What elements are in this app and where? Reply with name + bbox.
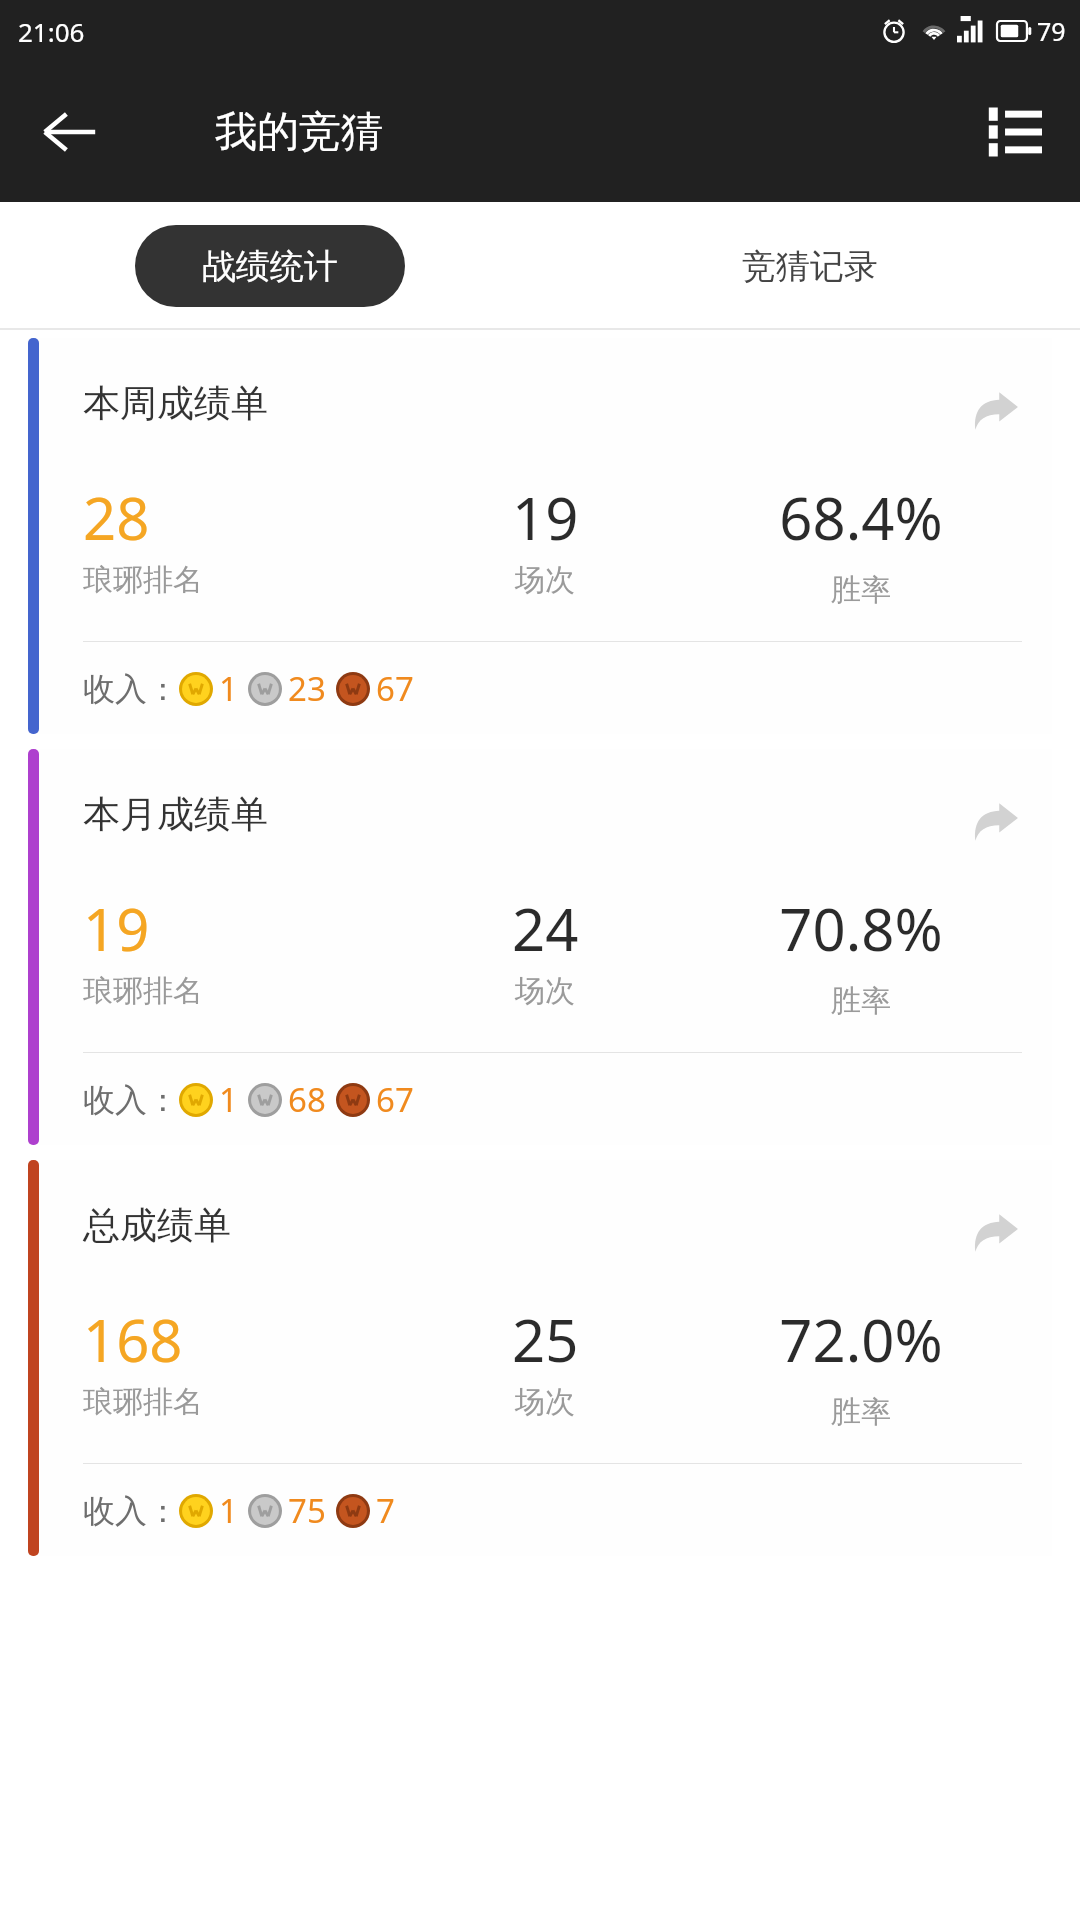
staticText: 琅琊排名 [83,561,203,599]
button[interactable]: 本月成绩单 [28,749,1052,1145]
staticText: 1 [219,666,238,711]
staticText: 胜率 [831,1393,891,1431]
button[interactable]: Ranking list [978,96,1050,168]
staticText: 1 [219,1488,238,1533]
staticText: 场次 [515,561,575,599]
button[interactable]: 战绩统计 [135,225,405,307]
staticText: 7 [376,1488,395,1533]
staticText: 23 [288,666,326,711]
staticText: 本周成绩单 [83,380,268,427]
staticText: 68.4% [779,478,943,557]
staticText: 24 [512,889,579,968]
button[interactable]: Back [40,102,100,162]
button[interactable]: 本周成绩单 [28,338,1052,734]
staticText: 70.8% [779,889,943,968]
staticText: 68 [288,1077,326,1122]
staticText: 琅琊排名 [83,1383,203,1421]
staticText: 25 [512,1300,579,1379]
staticText: 收入： [83,1491,179,1531]
staticText: 67 [376,1077,414,1122]
staticText: 竞猜记录 [742,245,878,288]
staticText: 28 [83,478,150,557]
staticText: 胜率 [831,982,891,1020]
staticText: 收入： [83,669,179,709]
staticText: 胜率 [831,571,891,609]
staticText: 本月成绩单 [83,791,268,838]
staticText: 168 [83,1300,183,1379]
staticText: 75 [288,1488,326,1533]
button[interactable]: 竞猜记录 [540,225,1080,307]
staticText: 21:06 [18,14,85,49]
button[interactable]: Share [964,1202,1022,1260]
staticText: 场次 [515,1383,575,1421]
staticText: 场次 [515,972,575,1010]
button[interactable]: Share [964,380,1022,438]
staticText: 收入： [83,1080,179,1120]
staticText: 总成绩单 [83,1202,231,1249]
button[interactable]: Share [964,791,1022,849]
staticText: 琅琊排名 [83,972,203,1010]
staticText: 我的竞猜 [215,106,383,159]
staticText: 19 [512,478,579,557]
staticText: 67 [376,666,414,711]
button[interactable]: 总成绩单 [28,1160,1052,1556]
staticText: 79 [1037,14,1066,48]
staticText: 战绩统计 [202,245,338,288]
staticText: 1 [219,1077,238,1122]
staticText: 19 [83,889,150,968]
staticText: 72.0% [779,1300,943,1379]
